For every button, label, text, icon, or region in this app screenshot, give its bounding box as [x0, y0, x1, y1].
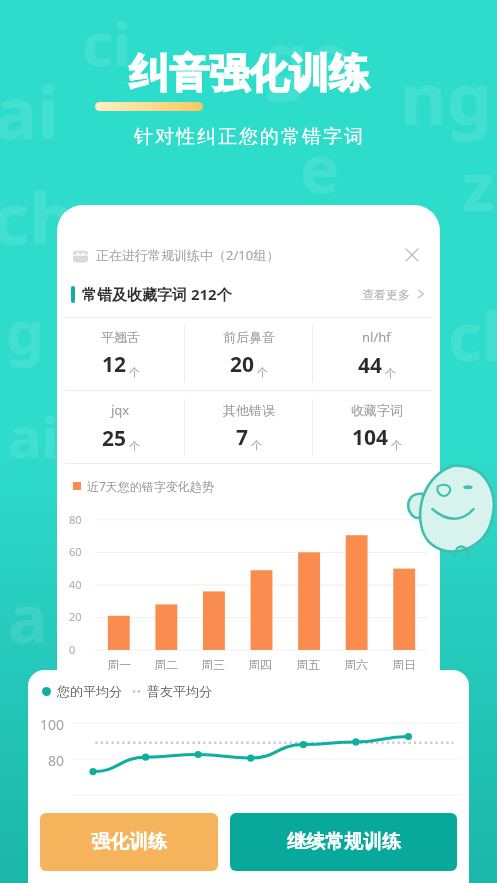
button[interactable]: 关闭 — [400, 243, 424, 267]
staticText: 104 — [352, 423, 389, 452]
staticText: 25 — [102, 424, 127, 453]
staticText: ai — [8, 398, 59, 474]
staticText: 近7天您的错字变化趋势 — [87, 478, 214, 494]
button[interactable]: 前后鼻音 — [185, 318, 312, 390]
staticText: 周二 — [154, 657, 178, 672]
staticText: 继续常规训练 — [287, 830, 401, 854]
button[interactable]: 继续常规训练 — [230, 813, 457, 871]
staticText: 20 — [230, 350, 255, 379]
staticText: 强化训练 — [91, 830, 167, 854]
staticText: 针对性纠正您的常错字词 — [133, 125, 364, 149]
staticText: 收藏字词 — [351, 402, 403, 418]
staticText: ge — [262, 8, 351, 106]
staticText: 其他错误 — [223, 402, 275, 418]
staticText: 12 — [102, 350, 127, 379]
staticText: 个 — [257, 365, 268, 379]
staticText: 44 — [358, 351, 383, 380]
staticText: 纠音强化训练 — [129, 48, 369, 98]
staticText: 个 — [385, 366, 396, 380]
button[interactable]: jqx — [57, 391, 184, 463]
staticText: nl/hf — [362, 328, 391, 346]
staticText: ch — [448, 290, 497, 380]
staticText: ci — [82, 2, 131, 84]
staticText: 常错及收藏字词 212个 — [82, 284, 232, 304]
staticText: 您的平均分 — [57, 683, 122, 699]
staticText: 个 — [251, 438, 262, 452]
staticText: 周三 — [201, 657, 225, 672]
button[interactable]: 平翘舌 — [57, 318, 184, 390]
staticText: 7 — [236, 423, 249, 452]
staticText: 20 — [69, 609, 82, 624]
staticText: 个 — [391, 438, 402, 452]
button[interactable]: 强化训练 — [40, 813, 218, 871]
staticText: 周一 — [107, 657, 131, 672]
staticText: 周六 — [344, 657, 368, 672]
staticText: z — [462, 140, 495, 230]
staticText: 前后鼻音 — [223, 329, 275, 345]
staticText: a — [8, 572, 48, 662]
staticText: 普友平均分 — [147, 683, 212, 699]
staticText: e — [300, 122, 340, 212]
staticText: ai — [0, 62, 59, 160]
staticText: 周日 — [392, 657, 416, 672]
staticText: 80 — [69, 512, 82, 527]
button[interactable]: 其他错误 — [185, 391, 312, 463]
staticText: 正在进行常规训练中（2/10组） — [96, 246, 280, 264]
staticText: ng — [400, 48, 493, 146]
staticText: ch — [0, 168, 76, 266]
staticText: 0 — [69, 642, 76, 657]
staticText: 周五 — [296, 657, 320, 672]
staticText: 80 — [48, 751, 65, 770]
staticText: 查看更多 — [362, 287, 410, 302]
staticText: 个 — [129, 439, 140, 453]
button[interactable]: 常错及收藏字词 212个 — [71, 281, 426, 307]
staticText: 100 — [40, 715, 65, 734]
staticText: jqx — [111, 401, 130, 419]
staticText: g — [6, 290, 44, 372]
staticText: 个 — [129, 365, 140, 379]
staticText: 平翘舌 — [101, 329, 140, 345]
staticText: 40 — [69, 577, 82, 592]
staticText: 60 — [69, 544, 82, 559]
button[interactable]: nl/hf — [313, 318, 440, 390]
staticText: 周四 — [248, 657, 272, 672]
button[interactable]: 收藏字词 — [313, 391, 440, 463]
